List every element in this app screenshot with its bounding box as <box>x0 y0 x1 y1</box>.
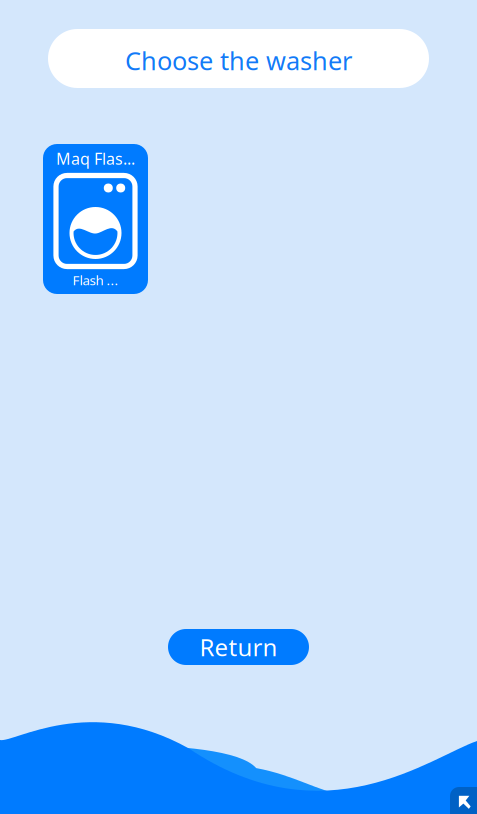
button[interactable]: Maq Flas... <box>43 144 148 294</box>
button[interactable]: Choose the washer <box>48 29 429 88</box>
staticText: Return <box>199 631 277 663</box>
staticText: Maq Flas... <box>56 148 135 169</box>
button[interactable]: Expand <box>450 787 477 814</box>
staticText: Choose the washer <box>125 44 352 77</box>
button[interactable]: Return <box>168 629 309 665</box>
staticText: Flash ... <box>72 271 118 289</box>
